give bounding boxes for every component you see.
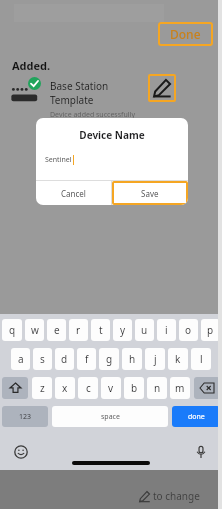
staticText: u (141, 323, 148, 337)
button[interactable]: j (145, 348, 165, 370)
staticText: Device Name (36, 128, 188, 142)
button[interactable]: Save (112, 181, 188, 205)
staticText: l (200, 352, 203, 366)
staticText: y (120, 323, 126, 337)
button[interactable]: h (122, 348, 142, 370)
staticText: d (61, 352, 68, 366)
button[interactable]: k (168, 348, 188, 370)
button[interactable]: o (179, 319, 198, 341)
staticText: x (62, 381, 68, 395)
staticText: q (9, 323, 16, 337)
button[interactable]: g (99, 348, 119, 370)
staticText: done (188, 412, 205, 422)
staticText: h (129, 352, 136, 366)
staticText: c (86, 381, 91, 395)
button[interactable]: n (147, 377, 167, 399)
button[interactable]: q (2, 319, 22, 341)
staticText: Base Station Template (50, 79, 148, 107)
button[interactable]: m (170, 377, 190, 399)
button[interactable]: Dictation (194, 445, 208, 459)
button[interactable]: b (124, 377, 144, 399)
staticText: Save (141, 188, 159, 199)
staticText: f (85, 352, 89, 366)
button[interactable]: 123 (2, 406, 48, 427)
button[interactable]: t (91, 319, 110, 341)
staticText: e (54, 323, 60, 337)
button[interactable]: x (55, 377, 75, 399)
button[interactable]: w (25, 319, 44, 341)
button[interactable]: Cancel (36, 181, 111, 205)
staticText: t (99, 323, 103, 337)
button[interactable]: u (135, 319, 154, 341)
staticText: o (185, 323, 192, 337)
button[interactable]: Done (170, 26, 201, 42)
button[interactable]: p (201, 319, 220, 341)
button[interactable]: v (101, 377, 121, 399)
button[interactable]: y (113, 319, 132, 341)
button[interactable]: c (78, 377, 98, 399)
button[interactable]: done (172, 406, 220, 427)
staticText: w (31, 323, 39, 337)
button[interactable]: l (191, 348, 211, 370)
staticText: s (40, 352, 45, 366)
button[interactable]: a (11, 348, 30, 370)
staticText: n (154, 381, 161, 395)
staticText: to change (153, 489, 200, 503)
staticText: r (76, 323, 81, 337)
staticText: v (108, 381, 114, 395)
button[interactable]: space (52, 406, 168, 427)
staticText: z (40, 381, 45, 395)
staticText: Cancel (61, 188, 86, 199)
button[interactable]: s (33, 348, 52, 370)
staticText: space (101, 412, 120, 422)
button[interactable]: e (47, 319, 66, 341)
button[interactable]: Edit device name (148, 74, 176, 102)
staticText: a (18, 352, 24, 366)
staticText: Device added successfully (50, 110, 135, 120)
button[interactable]: f (77, 348, 96, 370)
staticText: Sentinel (45, 155, 72, 165)
staticText: p (207, 323, 214, 337)
staticText: j (154, 352, 157, 366)
button[interactable]: Shift (2, 377, 28, 399)
button[interactable]: Backspace (194, 377, 220, 399)
staticText: k (175, 352, 181, 366)
staticText: m (175, 381, 185, 395)
staticText: Added. (12, 58, 51, 73)
button[interactable]: i (157, 319, 176, 341)
button[interactable]: r (69, 319, 88, 341)
staticText: 123 (19, 412, 32, 422)
staticText: i (165, 323, 168, 337)
button[interactable]: Emoji (14, 445, 28, 459)
staticText: Done (170, 26, 201, 42)
staticText: b (131, 381, 138, 395)
staticText: g (106, 352, 113, 366)
button[interactable]: d (55, 348, 74, 370)
button[interactable]: z (32, 377, 52, 399)
